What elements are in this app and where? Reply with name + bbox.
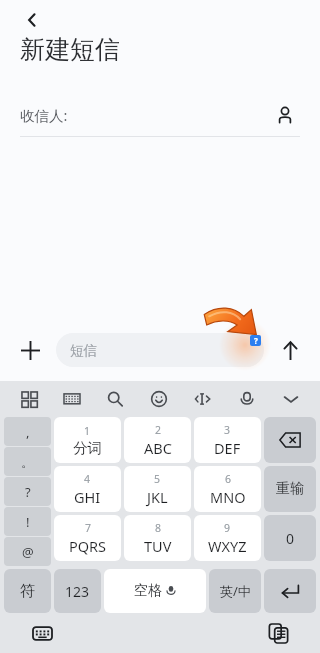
staticText: 3 (224, 423, 231, 437)
staticText: 5 (154, 472, 161, 486)
button[interactable]: 0 (264, 515, 316, 561)
button[interactable]: 4 (54, 466, 121, 512)
staticText: , (26, 423, 30, 441)
button[interactable]: Back (12, 0, 52, 40)
staticText: 分词 (73, 439, 102, 457)
staticText: JKL (147, 487, 168, 507)
staticText: 空格 (134, 582, 162, 600)
button[interactable]: Choose contact (270, 100, 300, 130)
staticText: 符 (20, 582, 35, 601)
button[interactable]: 7 (54, 515, 121, 561)
button[interactable]: ? (4, 477, 51, 506)
button[interactable]: Send (270, 330, 310, 370)
staticText: 重输 (276, 480, 304, 498)
button[interactable]: @ (4, 537, 51, 566)
button[interactable]: Add attachment (10, 330, 50, 370)
staticText: @ (22, 543, 34, 561)
staticText: MNO (210, 487, 246, 507)
button[interactable]: 1 (54, 417, 121, 463)
staticText: ? (254, 335, 258, 346)
staticText: 4 (84, 472, 91, 486)
staticText: 8 (155, 521, 162, 535)
button[interactable]: Emoji (144, 384, 174, 414)
staticText: 英/中 (220, 582, 251, 600)
staticText: ! (26, 513, 30, 531)
button[interactable]: 3 (194, 417, 261, 463)
staticText: 7 (85, 521, 92, 535)
button[interactable]: ! (4, 507, 51, 536)
staticText: 新建短信 (20, 34, 120, 65)
button[interactable]: Keyboard layout (57, 384, 87, 414)
staticText: PQRS (69, 536, 107, 556)
button[interactable]: Apps (14, 384, 44, 414)
staticText: ? (25, 483, 31, 501)
staticText: 2 (155, 423, 162, 437)
button[interactable]: Cursor move (188, 384, 218, 414)
staticText: 0 (286, 529, 295, 548)
staticText: 123 (65, 582, 90, 601)
button[interactable]: Hide keyboard (276, 384, 306, 414)
staticText: ABC (144, 438, 172, 458)
button[interactable]: 短信 (56, 333, 264, 367)
button[interactable]: 。 (4, 447, 51, 476)
button[interactable]: Voice input (232, 384, 262, 414)
button[interactable]: 2 (124, 417, 191, 463)
button[interactable]: 6 (194, 466, 261, 512)
staticText: WXYZ (208, 536, 247, 556)
button[interactable]: Switch keyboard (26, 617, 58, 649)
staticText: DEF (214, 438, 241, 458)
button[interactable]: Delete (264, 417, 316, 463)
button[interactable]: , (4, 417, 51, 446)
button[interactable]: 重输 (264, 466, 316, 512)
button[interactable]: 符 (4, 569, 51, 613)
button[interactable]: Clipboard (262, 617, 294, 649)
button[interactable]: 5 (124, 466, 191, 512)
staticText: 9 (224, 521, 231, 535)
button[interactable]: 英/中 (209, 569, 261, 613)
button[interactable]: Search (100, 384, 130, 414)
button[interactable]: 空格 (104, 569, 206, 613)
staticText: GHI (74, 487, 101, 507)
staticText: 1 (84, 424, 91, 438)
button[interactable]: 9 (194, 515, 261, 561)
button[interactable]: 123 (54, 569, 101, 613)
staticText: 收信人: (20, 105, 68, 125)
button[interactable]: 8 (124, 515, 191, 561)
staticText: 6 (225, 472, 232, 486)
staticText: TUV (144, 536, 172, 556)
staticText: 短信 (70, 342, 97, 359)
button[interactable]: Enter (264, 569, 316, 613)
staticText: 。 (21, 454, 34, 470)
